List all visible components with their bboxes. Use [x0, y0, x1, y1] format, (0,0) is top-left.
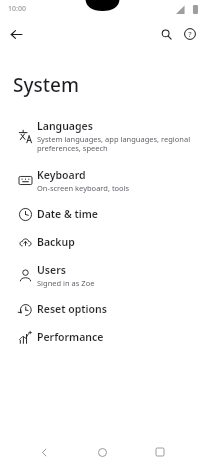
button[interactable]: Users — [0, 256, 205, 295]
staticText: Users — [37, 263, 66, 277]
button[interactable]: Languages — [0, 112, 205, 161]
staticText: 10:00 — [8, 4, 26, 14]
staticText: ? — [188, 29, 192, 39]
staticText: Performance — [37, 330, 104, 344]
button[interactable]: Home — [89, 439, 115, 465]
staticText: System — [13, 72, 79, 98]
staticText: On-screen keyboard, tools — [37, 183, 130, 193]
button[interactable]: Back — [5, 23, 27, 45]
staticText: Date & time — [37, 207, 98, 221]
staticText: Reset options — [37, 302, 107, 316]
button[interactable]: Search — [155, 23, 177, 45]
staticText: Languages — [37, 119, 93, 133]
staticText: Signed in as Zoe — [37, 278, 95, 288]
button[interactable]: Help — [179, 23, 201, 45]
button[interactable]: Date & time — [0, 200, 205, 228]
staticText: System languages, app languages, regiona… — [37, 134, 193, 154]
button[interactable]: Recent apps — [147, 439, 173, 465]
staticText: Keyboard — [37, 168, 86, 182]
button[interactable]: Performance — [0, 323, 205, 351]
staticText: Backup — [37, 235, 75, 249]
button[interactable]: Keyboard — [0, 161, 205, 200]
button[interactable]: Reset options — [0, 295, 205, 323]
button[interactable]: Back — [31, 439, 57, 465]
button[interactable]: Backup — [0, 228, 205, 256]
